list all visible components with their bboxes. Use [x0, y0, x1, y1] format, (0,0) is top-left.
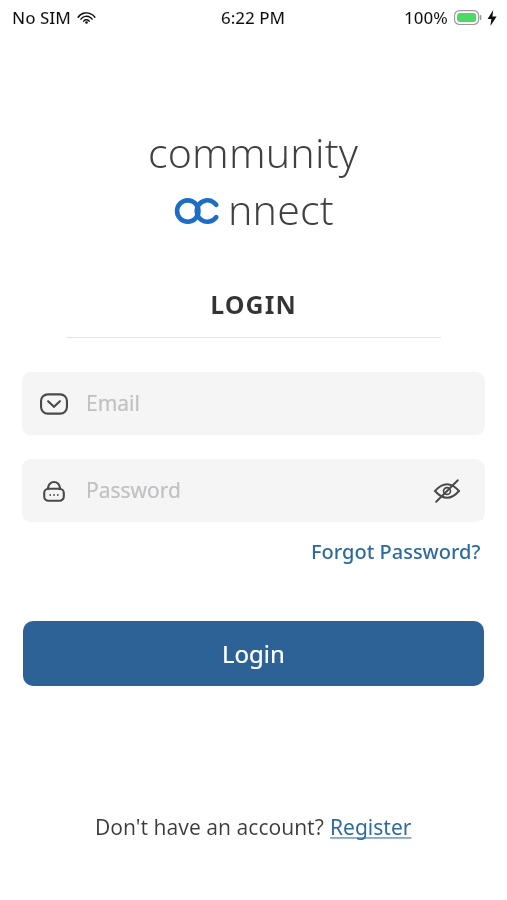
- button[interactable]: Forgot Password?: [307, 534, 485, 569]
- staticText: Don't have an account?: [95, 813, 330, 842]
- staticText: Email: [86, 389, 467, 418]
- button[interactable]: Login: [23, 621, 484, 686]
- button[interactable]: Show password: [427, 471, 467, 511]
- staticText: Password: [86, 476, 427, 505]
- staticText: community: [148, 124, 359, 180]
- staticText: Forgot Password?: [311, 538, 481, 565]
- button[interactable]: Register: [330, 813, 412, 842]
- button[interactable]: Email: [22, 372, 485, 435]
- button[interactable]: Password: [22, 459, 485, 522]
- staticText: Login: [222, 637, 285, 670]
- staticText: 6:22 PM: [221, 6, 286, 29]
- staticText: LOGIN: [0, 287, 507, 321]
- staticText: Register: [330, 813, 412, 842]
- staticText: nnect: [228, 181, 334, 237]
- staticText: No SIM: [12, 6, 71, 29]
- staticText: 100%: [404, 6, 448, 29]
